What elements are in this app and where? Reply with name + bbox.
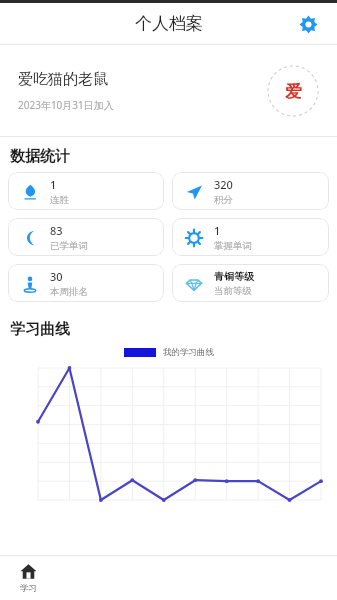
- button[interactable]: Settings: [293, 9, 323, 39]
- staticText: 2023年10月31日加入: [18, 98, 114, 112]
- staticText: 数据统计: [10, 147, 70, 166]
- staticText: 积分: [214, 194, 233, 206]
- button[interactable]: 1: [8, 172, 164, 210]
- staticText: 爱吃猫的老鼠: [18, 70, 108, 89]
- button[interactable]: 1: [172, 218, 329, 256]
- staticText: 爱: [285, 81, 302, 102]
- staticText: 学习: [20, 583, 37, 594]
- button[interactable]: 学习: [20, 563, 37, 594]
- staticText: 1: [214, 223, 221, 238]
- staticText: 我的学习曲线: [163, 347, 214, 358]
- button[interactable]: 青铜等级: [172, 264, 329, 302]
- staticText: 个人档案: [135, 13, 203, 34]
- staticText: 1: [50, 177, 57, 192]
- staticText: 当前等级: [214, 285, 252, 297]
- button[interactable]: 83: [8, 218, 164, 256]
- staticText: 本周排名: [50, 286, 88, 298]
- staticText: 已学单词: [50, 240, 88, 252]
- staticText: 83: [50, 223, 63, 238]
- staticText: 30: [50, 269, 63, 284]
- staticText: 320: [214, 177, 233, 192]
- staticText: 掌握单词: [214, 240, 252, 252]
- staticText: 连胜: [50, 194, 69, 206]
- button[interactable]: 爱吃猫的老鼠: [0, 45, 337, 136]
- staticText: 学习曲线: [10, 320, 70, 339]
- button[interactable]: 320: [172, 172, 329, 210]
- button[interactable]: 30: [8, 264, 164, 302]
- staticText: 青铜等级: [214, 270, 254, 283]
